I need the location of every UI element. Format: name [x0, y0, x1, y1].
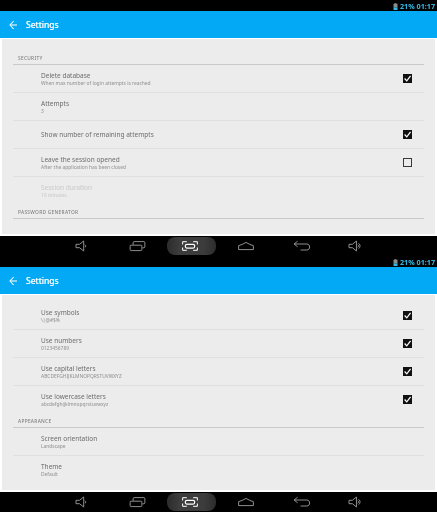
- staticText: Landscape: [41, 443, 66, 450]
- button[interactable]: Use lowercase letters: [2, 386, 435, 414]
- staticText: Show number of remaining attempts: [41, 130, 154, 139]
- staticText: 10 minutes: [41, 192, 67, 199]
- staticText: After the application has been closed: [41, 164, 126, 171]
- button[interactable]: Screenshot: [177, 236, 203, 256]
- staticText: PASSWORD GENERATOR: [18, 209, 79, 216]
- button[interactable]: Volume down: [68, 492, 94, 512]
- staticText: 21% 01:17: [400, 257, 436, 267]
- button[interactable]: Delete database: [2, 65, 435, 93]
- staticText: Settings: [26, 275, 59, 287]
- staticText: ABCDEFGHIJKLMNOPQRSTUVWXYZ: [41, 373, 122, 380]
- button[interactable]: Home: [233, 236, 259, 256]
- staticText: Leave the session opened: [41, 155, 120, 164]
- button[interactable]: Back: [3, 271, 23, 291]
- button[interactable]: Back: [3, 15, 23, 35]
- staticText: APPEARANCE: [18, 418, 52, 425]
- staticText: Delete database: [41, 71, 91, 80]
- staticText: Use capital letters: [41, 364, 96, 373]
- staticText: Attempts: [41, 99, 70, 108]
- button[interactable]: Recent apps: [124, 236, 150, 256]
- button[interactable]: Volume up: [342, 492, 368, 512]
- staticText: Default: [41, 471, 58, 478]
- button[interactable]: Back: [288, 236, 314, 256]
- button[interactable]: Attempts: [2, 93, 435, 121]
- button[interactable]: Use symbols: [2, 302, 435, 330]
- button[interactable]: Back: [288, 492, 314, 512]
- button[interactable]: Screenshot: [177, 492, 203, 512]
- button[interactable]: Volume up: [342, 236, 368, 256]
- staticText: 21% 01:17: [400, 1, 436, 11]
- button[interactable]: Recent apps: [124, 492, 150, 512]
- staticText: SECURITY: [18, 55, 43, 62]
- staticText: 0123456789: [41, 345, 69, 352]
- button[interactable]: Use capital letters: [2, 358, 435, 386]
- staticText: Session duration: [41, 183, 92, 192]
- staticText: Use lowercase letters: [41, 392, 106, 401]
- staticText: \|@#$%: [41, 317, 60, 324]
- staticText: Theme: [41, 462, 63, 471]
- button[interactable]: Home: [233, 492, 259, 512]
- button[interactable]: Volume down: [68, 236, 94, 256]
- button[interactable]: Screen orientation: [2, 428, 435, 456]
- staticText: Use numbers: [41, 336, 82, 345]
- staticText: Screen orientation: [41, 434, 98, 443]
- button[interactable]: Leave the session opened: [2, 149, 435, 177]
- button[interactable]: Show number of remaining attempts: [2, 121, 435, 149]
- staticText: abcdefghijklmnopqrstuvwxyz: [41, 401, 109, 408]
- staticText: When max number of login attempts is rea…: [41, 80, 151, 87]
- button[interactable]: Theme: [2, 456, 435, 484]
- button[interactable]: Use numbers: [2, 330, 435, 358]
- staticText: 3: [41, 108, 44, 115]
- staticText: Use symbols: [41, 308, 80, 317]
- staticText: Settings: [26, 19, 59, 31]
